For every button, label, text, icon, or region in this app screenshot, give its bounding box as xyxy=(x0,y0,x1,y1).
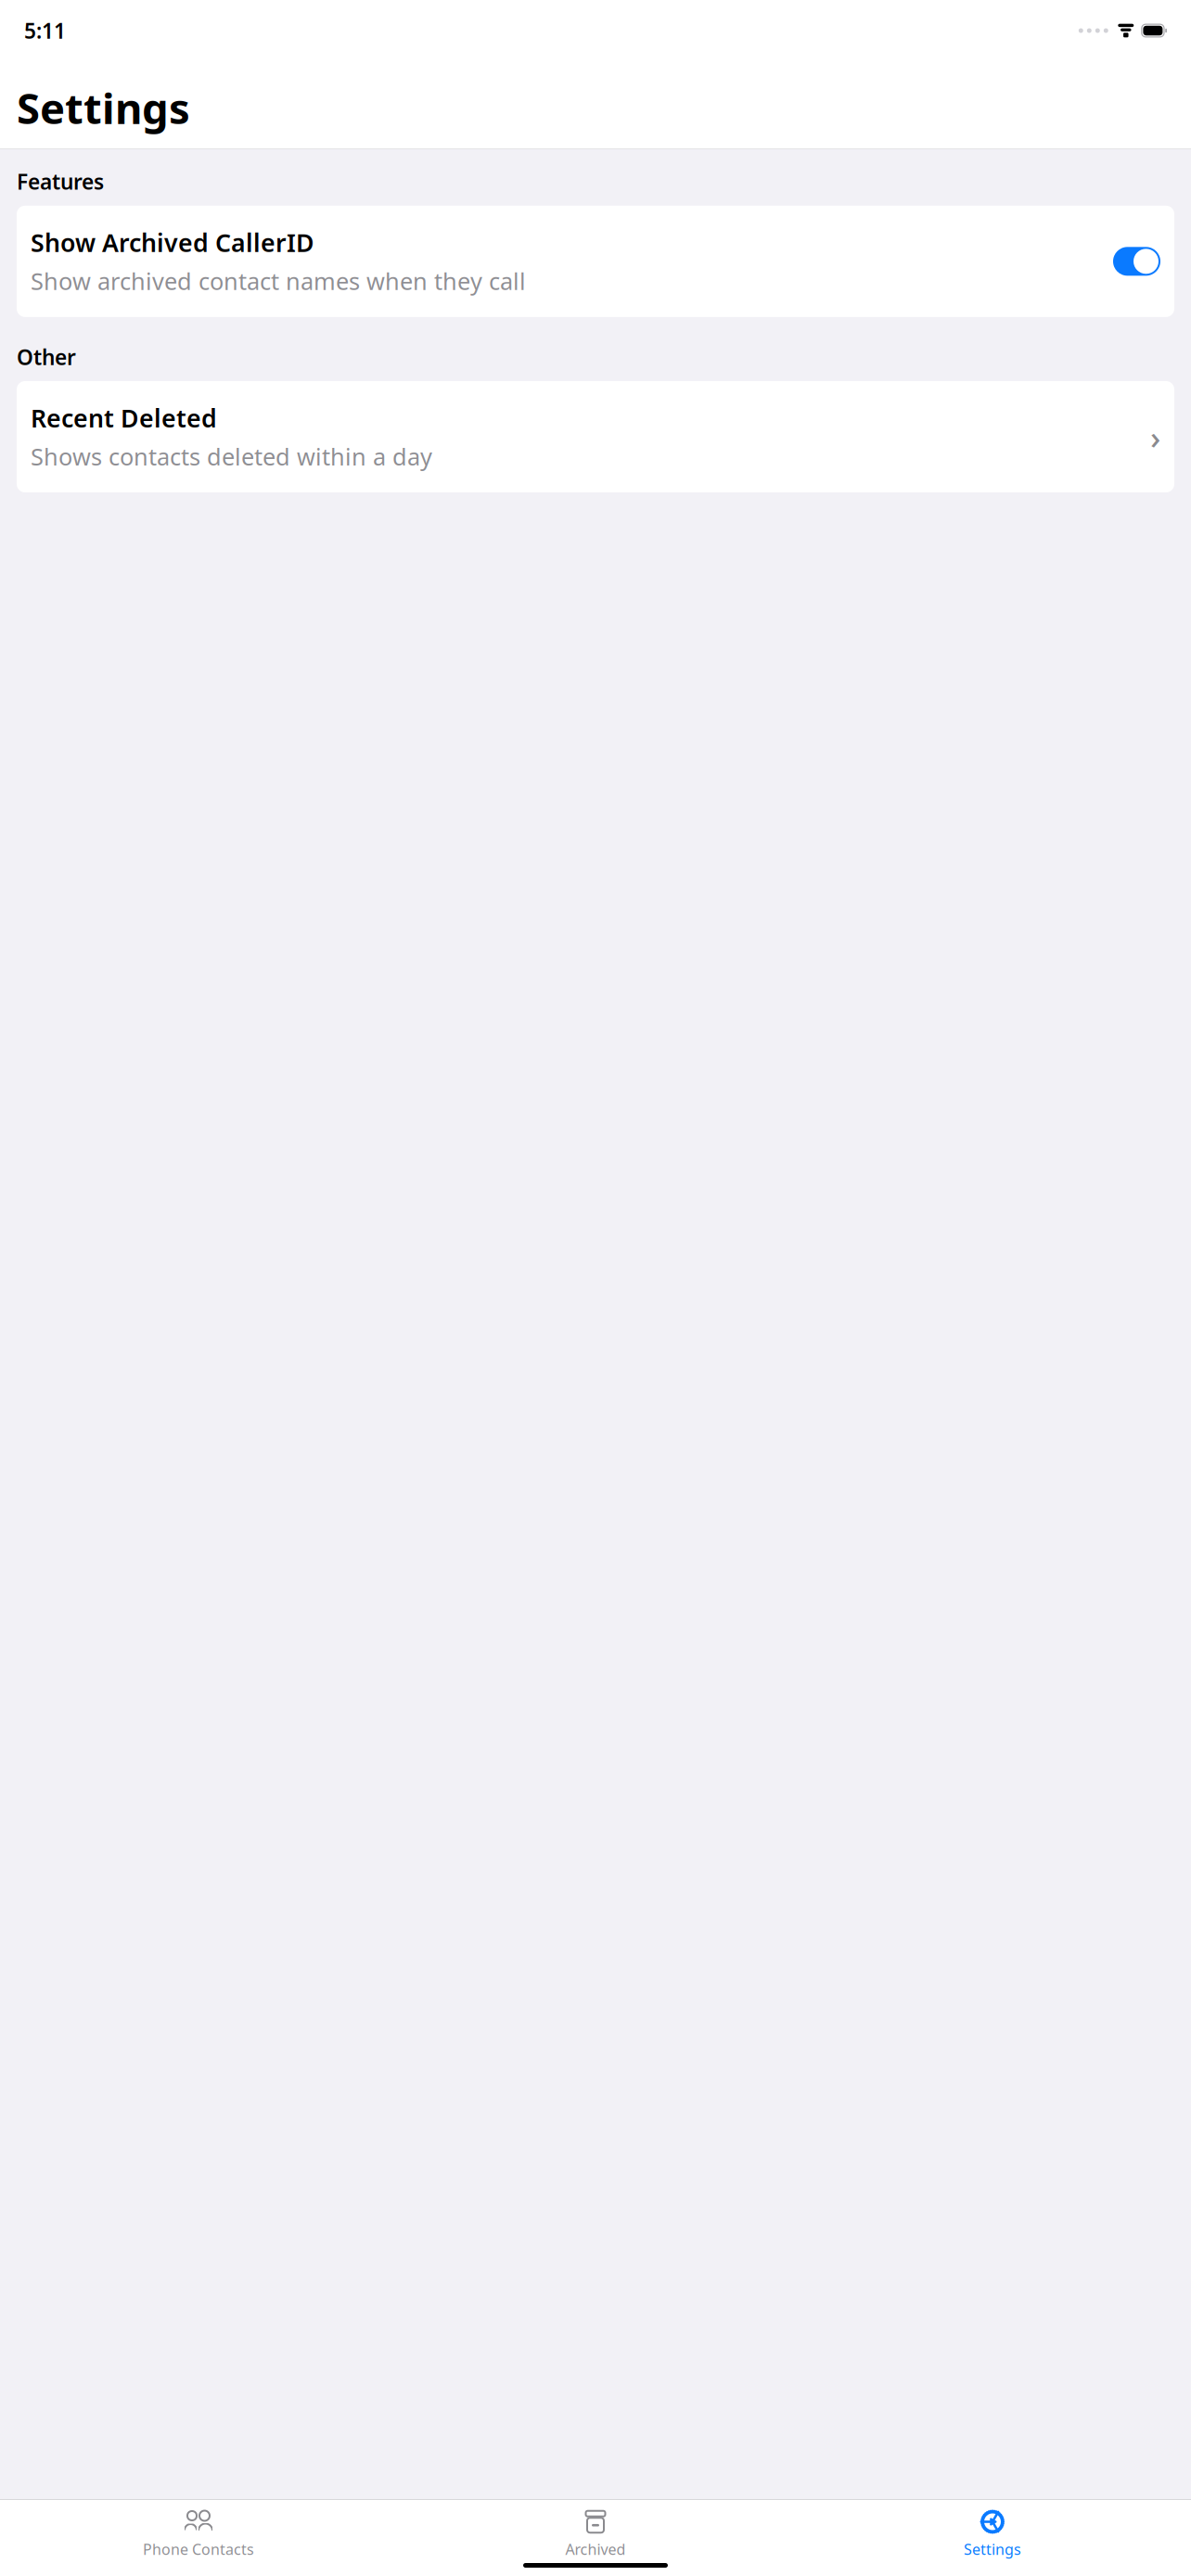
staticText: Settings xyxy=(964,2539,1021,2559)
staticText: Recent Deleted xyxy=(31,402,217,434)
staticText: Show Archived CallerID xyxy=(31,226,314,259)
staticText: Other xyxy=(17,343,76,371)
button[interactable]: Show Archived CallerID xyxy=(17,206,1174,317)
staticText: 5:11 xyxy=(24,17,66,45)
button[interactable]: Phone Contacts xyxy=(0,2507,397,2561)
staticText: Settings xyxy=(17,80,190,136)
staticText: Show archived contact names when they ca… xyxy=(31,265,526,297)
staticText: Features xyxy=(17,168,104,195)
staticText: › xyxy=(1150,415,1160,458)
staticText: Phone Contacts xyxy=(143,2539,254,2559)
button[interactable]: Settings xyxy=(794,2507,1191,2561)
staticText: Archived xyxy=(565,2539,626,2559)
button[interactable]: Recent Deleted xyxy=(17,381,1174,492)
staticText: Shows contacts deleted within a day xyxy=(31,441,432,472)
button[interactable]: Archived xyxy=(397,2507,794,2561)
